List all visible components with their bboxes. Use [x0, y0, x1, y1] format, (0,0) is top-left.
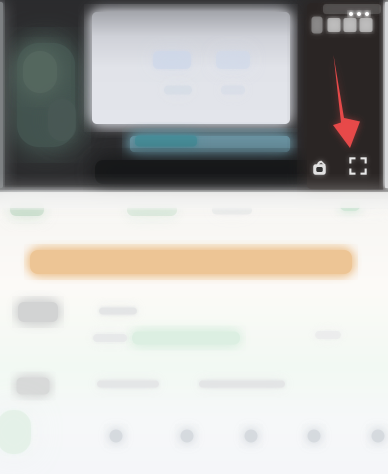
button[interactable]: Action [0, 0, 388, 474]
button[interactable]: Action [0, 0, 388, 474]
button[interactable]: Lock screen [179, 222, 209, 252]
button[interactable]: More options [0, 0, 388, 474]
button[interactable]: Action [0, 0, 388, 474]
button[interactable]: Action [0, 0, 388, 474]
button[interactable]: Enter full screen [179, 222, 209, 252]
button[interactable]: Action [0, 0, 388, 474]
